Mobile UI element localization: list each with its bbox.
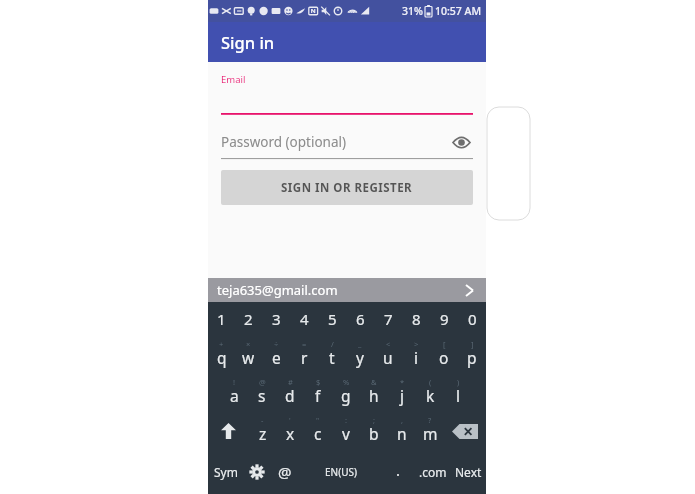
staticText: = xyxy=(302,339,307,349)
staticText: a xyxy=(230,385,239,406)
button[interactable]: teja635@gmail.com xyxy=(208,278,486,302)
staticText: % xyxy=(343,377,350,387)
button[interactable]: Next xyxy=(451,450,486,494)
button[interactable]: 7 xyxy=(374,302,402,336)
button[interactable]: > xyxy=(402,336,430,374)
button[interactable]: 3 xyxy=(262,302,290,336)
button[interactable]: " xyxy=(304,412,332,450)
button[interactable]: ; xyxy=(360,412,388,450)
staticText: 31% xyxy=(402,4,423,18)
button[interactable]: .com xyxy=(414,450,451,494)
button[interactable]: % xyxy=(332,374,360,412)
staticText: 6 xyxy=(356,309,365,329)
staticText: 2 xyxy=(244,309,253,329)
staticText: j xyxy=(400,385,404,406)
button[interactable]: 6 xyxy=(346,302,374,336)
button[interactable]: Sym xyxy=(208,450,243,494)
button[interactable]: EN(US) xyxy=(299,450,382,494)
staticText: 0 xyxy=(468,309,477,329)
staticText: d xyxy=(285,385,295,406)
staticText: y xyxy=(356,347,364,368)
staticText: ; xyxy=(373,415,376,425)
button[interactable]: @ xyxy=(271,450,299,494)
button[interactable]: . xyxy=(382,450,414,494)
staticText: v xyxy=(342,423,350,444)
button[interactable]: & xyxy=(360,374,388,412)
staticText: b xyxy=(369,423,379,444)
button[interactable]: Settings xyxy=(243,450,271,494)
button[interactable]: 8 xyxy=(402,302,430,336)
button[interactable]: 1 xyxy=(208,302,235,336)
staticText: . xyxy=(396,460,401,480)
button[interactable]: ? xyxy=(416,412,444,450)
staticText: * xyxy=(400,377,405,387)
staticText: x xyxy=(286,423,295,444)
staticText: [ xyxy=(443,339,446,349)
button[interactable]: ) xyxy=(444,374,472,412)
button[interactable]: < xyxy=(374,336,402,374)
staticText: & xyxy=(371,377,377,387)
button[interactable]: $ xyxy=(304,374,332,412)
staticText: .com xyxy=(419,464,447,480)
staticText: h xyxy=(369,385,379,406)
staticText: Email xyxy=(221,73,246,86)
staticText: Password (optional) xyxy=(221,133,347,151)
staticText: t xyxy=(329,347,335,368)
staticText: r xyxy=(301,347,308,368)
button[interactable]: - xyxy=(249,412,276,450)
button[interactable]: Email xyxy=(221,73,473,115)
staticText: ] xyxy=(471,339,474,349)
button[interactable]: [ xyxy=(430,336,458,374)
staticText: o xyxy=(439,347,449,368)
button[interactable]: SIGN IN OR REGISTER xyxy=(221,170,473,205)
staticText: 5 xyxy=(328,309,337,329)
button[interactable]: × xyxy=(235,336,262,374)
button[interactable]: / xyxy=(318,336,346,374)
staticText: teja635@gmail.com xyxy=(217,281,338,299)
button[interactable]: 0 xyxy=(458,302,486,336)
button[interactable]: Sign in xyxy=(208,22,486,62)
button[interactable]: , xyxy=(388,412,416,450)
staticText: SIGN IN OR REGISTER xyxy=(281,180,413,196)
staticText: g xyxy=(341,385,351,406)
staticText: " xyxy=(316,415,320,425)
staticText: c xyxy=(314,423,322,444)
button[interactable]: More suggestions xyxy=(460,281,478,299)
button[interactable]: # xyxy=(276,374,304,412)
button[interactable]: + xyxy=(208,336,235,374)
staticText: 4 xyxy=(300,309,309,329)
staticText: u xyxy=(383,347,393,368)
button[interactable]: Backspace xyxy=(444,412,486,450)
button[interactable]: ÷ xyxy=(262,336,290,374)
button[interactable]: ! xyxy=(221,374,248,412)
button[interactable]: ] xyxy=(458,336,486,374)
staticText: EN(US) xyxy=(325,465,357,479)
staticText: 10:57 AM xyxy=(435,4,482,18)
button[interactable]: 9 xyxy=(430,302,458,336)
button[interactable]: 4 xyxy=(290,302,318,336)
button[interactable]: Shift xyxy=(208,412,249,450)
button[interactable]: * xyxy=(388,374,416,412)
staticText: / xyxy=(331,339,334,349)
staticText: w xyxy=(242,347,255,368)
staticText: : xyxy=(345,415,348,425)
staticText: _ xyxy=(358,339,362,349)
staticText: - xyxy=(261,415,264,425)
staticText: 9 xyxy=(440,309,449,329)
staticText: ( xyxy=(429,377,432,387)
button[interactable]: ' xyxy=(276,412,304,450)
staticText: z xyxy=(259,423,267,444)
button[interactable]: = xyxy=(290,336,318,374)
button[interactable]: 5 xyxy=(318,302,346,336)
button[interactable]: _ xyxy=(346,336,374,374)
button[interactable]: : xyxy=(332,412,360,450)
button[interactable]: 2 xyxy=(235,302,262,336)
button[interactable]: ( xyxy=(416,374,444,412)
button[interactable]: Show password xyxy=(449,130,473,154)
staticText: Sym xyxy=(214,464,238,480)
staticText: 7 xyxy=(384,309,393,329)
staticText: # xyxy=(288,377,293,387)
staticText: × xyxy=(246,339,251,349)
button[interactable]: @ xyxy=(248,374,276,412)
button[interactable]: Password (optional) xyxy=(221,130,473,159)
